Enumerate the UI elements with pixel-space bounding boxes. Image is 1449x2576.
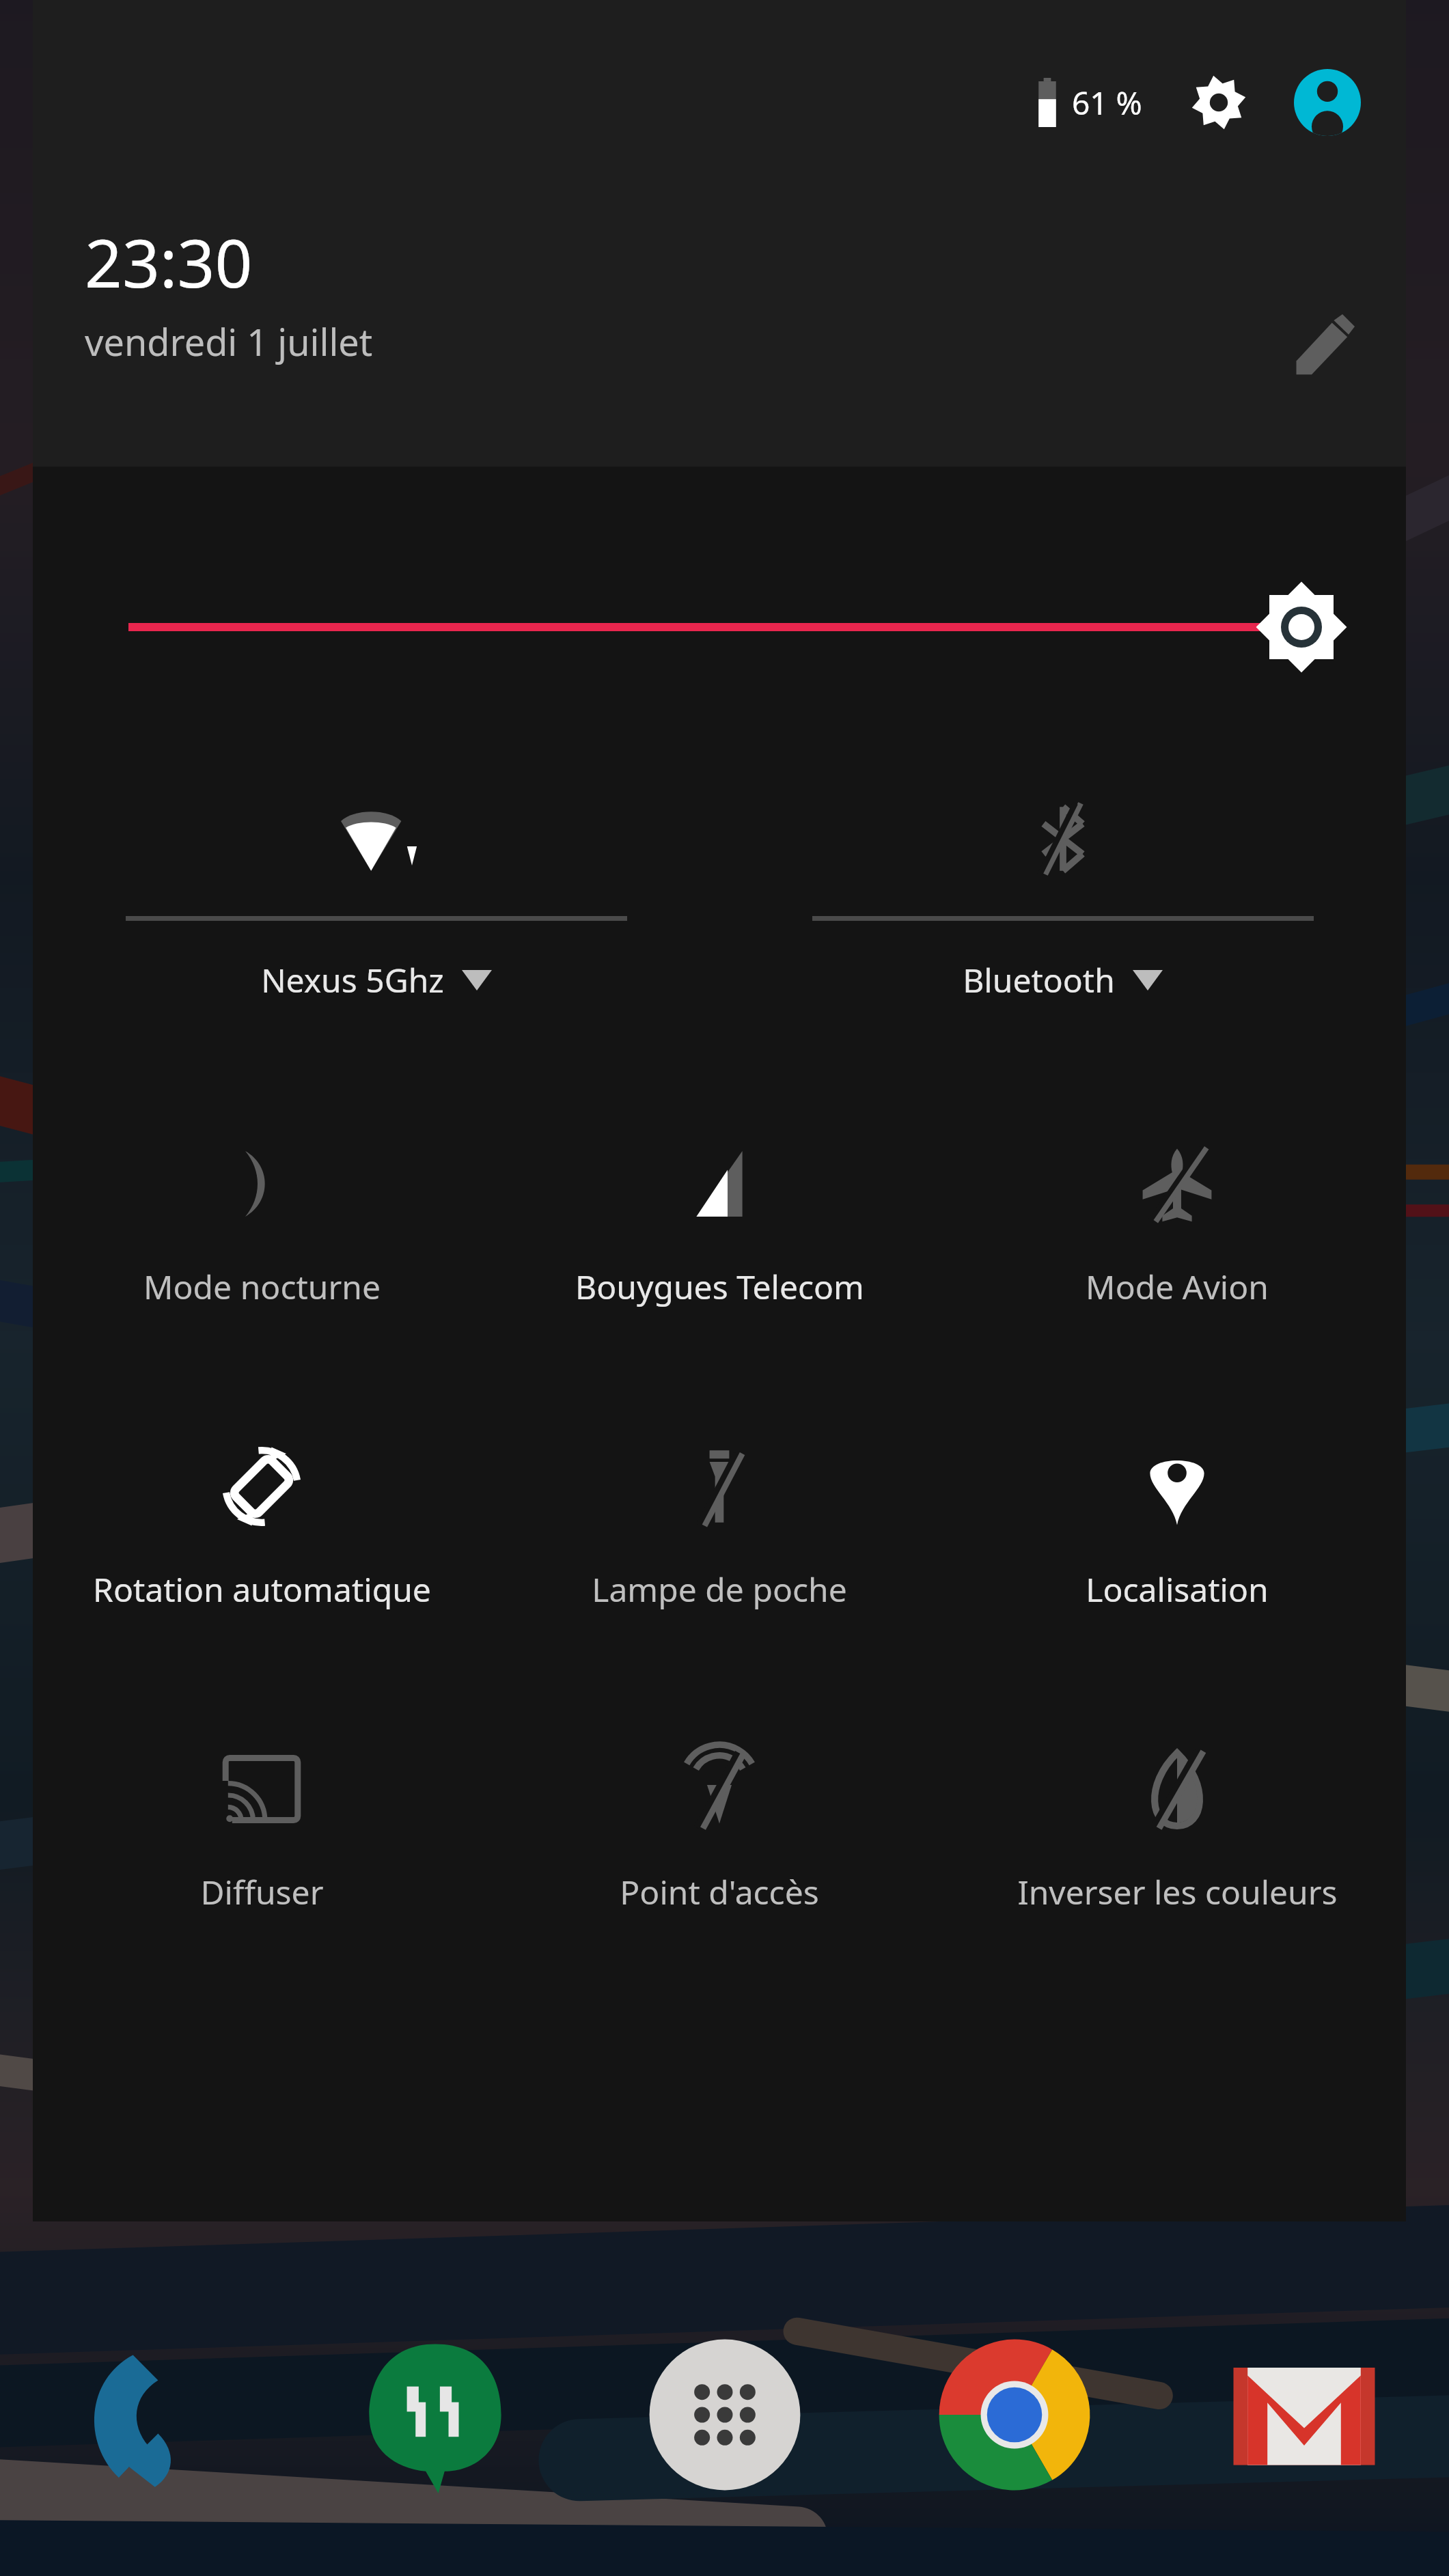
button[interactable]: Rotation automatique xyxy=(33,1439,491,1618)
staticText: vendredi 1 juillet xyxy=(85,316,373,367)
button[interactable]: Mode Avion xyxy=(948,1136,1406,1316)
staticText: Mode nocturne xyxy=(143,1264,381,1309)
button[interactable]: Gmail xyxy=(1159,2323,1449,2507)
button[interactable]: Localisation xyxy=(948,1439,1406,1618)
button[interactable]: 23:30 xyxy=(85,217,387,374)
button[interactable]: Hangouts xyxy=(290,2323,580,2507)
button[interactable]: Inverser les couleurs xyxy=(948,1741,1406,1921)
staticText: Inverser les couleurs xyxy=(1017,1870,1338,1914)
staticText: Point d'accès xyxy=(620,1870,819,1914)
button[interactable]: Bouygues Telecom xyxy=(491,1136,948,1316)
button[interactable]: Lampe de poche xyxy=(491,1439,948,1618)
button[interactable]: Mode nocturne xyxy=(33,1136,491,1316)
staticText: Lampe de poche xyxy=(592,1567,847,1611)
button[interactable]: Edit xyxy=(1256,280,1392,410)
button[interactable]: Settings xyxy=(1182,66,1256,139)
button[interactable]: Bluetooth xyxy=(719,767,1406,1061)
button[interactable]: Nexus 5Ghz xyxy=(33,767,719,1061)
staticText: Bluetooth xyxy=(963,958,1115,1002)
button[interactable]: Chrome xyxy=(870,2323,1159,2507)
button[interactable]: Phone xyxy=(0,2323,290,2507)
staticText: Diffuser xyxy=(200,1870,324,1914)
button[interactable]: Diffuser xyxy=(33,1741,491,1921)
staticText: Mode Avion xyxy=(1086,1264,1269,1309)
button[interactable]: Battery 61 percent xyxy=(1023,64,1152,141)
staticText: 23:30 xyxy=(85,217,253,307)
staticText: Rotation automatique xyxy=(93,1567,431,1611)
staticText: Nexus 5Ghz xyxy=(261,958,444,1002)
button[interactable]: Apps xyxy=(580,2323,870,2507)
staticText: 61 % xyxy=(1072,81,1142,124)
staticText: Bouygues Telecom xyxy=(575,1264,864,1309)
button[interactable]: Brightness xyxy=(33,576,1406,678)
button[interactable]: User profile xyxy=(1290,65,1365,140)
staticText: Localisation xyxy=(1086,1567,1269,1611)
button[interactable]: Point d'accès xyxy=(491,1741,948,1921)
